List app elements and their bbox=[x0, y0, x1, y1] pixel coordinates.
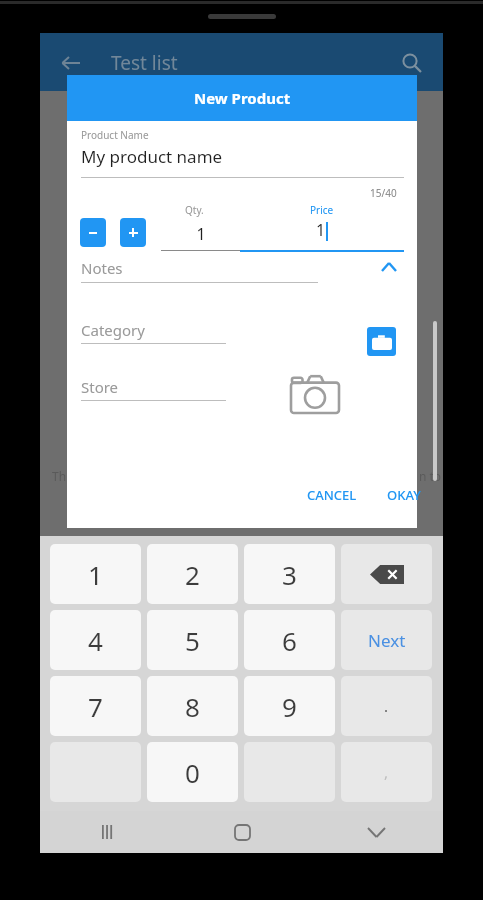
staticText: Qty. bbox=[185, 203, 204, 217]
button[interactable]: Product photo placeholder bbox=[289, 371, 341, 415]
staticText: 1 bbox=[88, 557, 103, 592]
staticText: OKAY bbox=[387, 486, 421, 504]
staticText: Notes bbox=[81, 258, 123, 278]
staticText: Price bbox=[310, 203, 334, 217]
button[interactable]: OKAY bbox=[375, 480, 433, 510]
button[interactable]: 7 bbox=[50, 676, 141, 736]
staticText: n to bbox=[419, 468, 442, 484]
button[interactable]: Home bbox=[175, 811, 309, 853]
button[interactable]: 1 bbox=[161, 219, 241, 249]
staticText: Product Name bbox=[81, 128, 149, 142]
staticText: , bbox=[384, 762, 389, 782]
button[interactable]: Recent apps bbox=[40, 811, 175, 853]
button[interactable]: 0 bbox=[147, 742, 238, 802]
staticText: CANCEL bbox=[307, 486, 357, 504]
button[interactable]: 8 bbox=[147, 676, 238, 736]
staticText: 6 bbox=[282, 623, 297, 658]
button[interactable]: 1 bbox=[50, 544, 141, 604]
staticText: 4 bbox=[88, 623, 103, 658]
button[interactable]: Collapse bbox=[374, 252, 404, 282]
staticText: Test list bbox=[111, 50, 178, 76]
staticText: 15/40 bbox=[370, 186, 397, 200]
button[interactable]: 4 bbox=[50, 610, 141, 670]
button[interactable]: Take photo bbox=[367, 327, 396, 356]
staticText: 2 bbox=[185, 557, 200, 592]
staticText: My product name bbox=[81, 145, 223, 168]
staticText: 3 bbox=[282, 557, 297, 592]
staticText: New Product bbox=[194, 88, 291, 108]
staticText: Next bbox=[368, 629, 406, 652]
button[interactable]: Increase quantity bbox=[120, 218, 146, 247]
button[interactable]: Hide keyboard bbox=[309, 811, 443, 853]
button[interactable]: Decrease quantity bbox=[80, 218, 106, 247]
staticText: 7 bbox=[88, 689, 103, 724]
staticText: Store bbox=[81, 377, 119, 397]
staticText: Category bbox=[81, 320, 145, 340]
button[interactable]: 6 bbox=[244, 610, 335, 670]
staticText: Thi bbox=[52, 468, 70, 484]
button[interactable]: Next bbox=[341, 610, 432, 670]
staticText: 8 bbox=[185, 689, 200, 724]
staticText: 9 bbox=[282, 689, 297, 724]
staticText: 5 bbox=[185, 623, 200, 658]
button[interactable]: Search bbox=[395, 46, 429, 80]
button[interactable]: 2 bbox=[147, 544, 238, 604]
button[interactable]: 1 bbox=[240, 219, 404, 249]
button[interactable]: 3 bbox=[244, 544, 335, 604]
button[interactable]: Backspace bbox=[341, 544, 432, 604]
staticText: 1 bbox=[161, 223, 241, 245]
staticText: 1 bbox=[316, 219, 326, 241]
button[interactable]: 9 bbox=[244, 676, 335, 736]
button[interactable]: 5 bbox=[147, 610, 238, 670]
staticText: . bbox=[384, 696, 389, 716]
button[interactable]: Back bbox=[54, 47, 86, 79]
button[interactable]: CANCEL bbox=[295, 480, 369, 510]
staticText: 0 bbox=[185, 755, 200, 790]
